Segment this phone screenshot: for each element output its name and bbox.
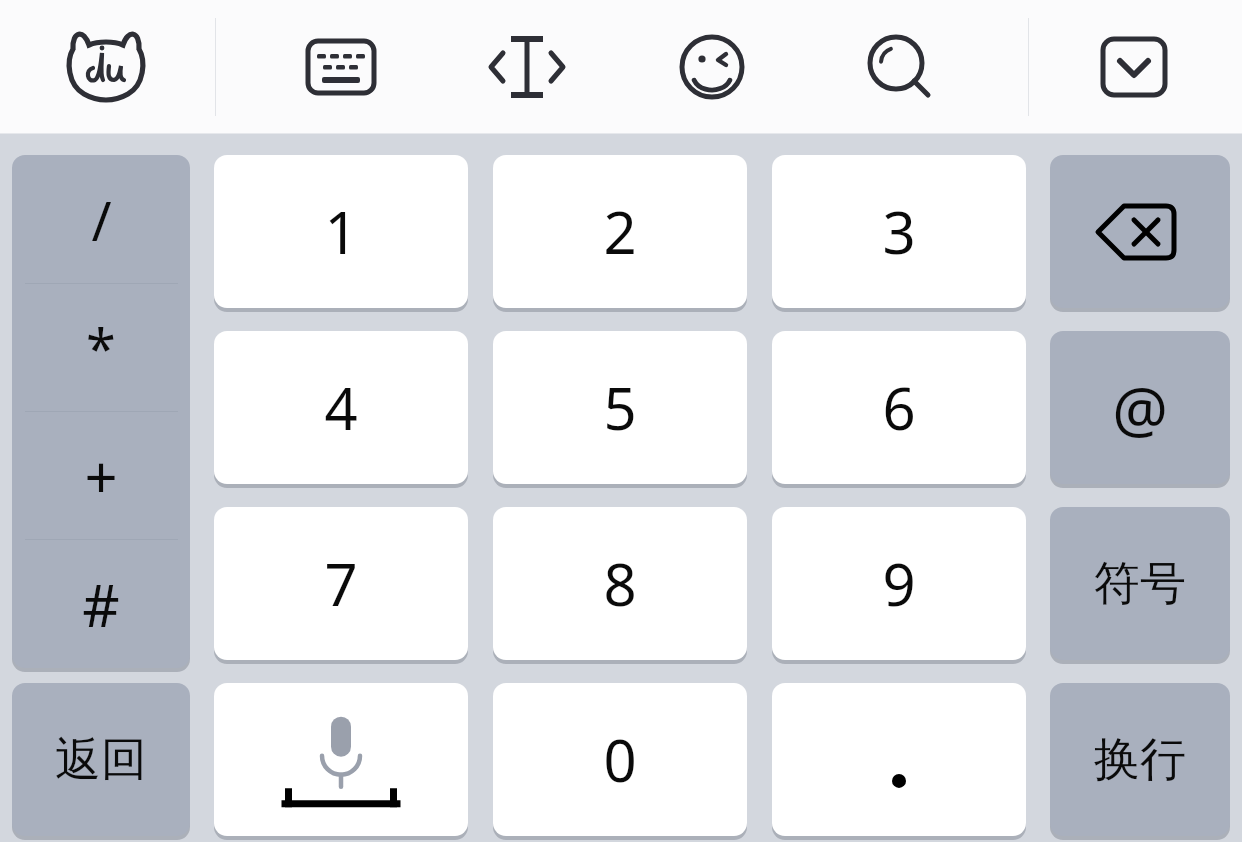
button[interactable]: Search (851, 19, 947, 115)
button[interactable]: Edit cursor (479, 19, 575, 115)
staticText: 0 (603, 720, 637, 799)
staticText: 2 (603, 192, 637, 271)
button[interactable]: 1 (214, 155, 468, 308)
button[interactable]: 8 (493, 507, 747, 660)
staticText: 9 (882, 544, 916, 623)
staticText: 5 (603, 368, 637, 447)
staticText: 1 (324, 192, 358, 271)
staticText: 换行 (1094, 731, 1186, 789)
staticText: 4 (324, 368, 358, 447)
button[interactable]: 4 (214, 331, 468, 484)
button[interactable]: 6 (772, 331, 1026, 484)
button[interactable]: 3 (772, 155, 1026, 308)
button[interactable]: Emoji (664, 19, 760, 115)
staticText: # (82, 565, 120, 644)
button[interactable]: / (12, 155, 190, 284)
staticText: 6 (882, 368, 916, 447)
button[interactable]: Space, voice input (214, 683, 468, 836)
staticText: 符号 (1094, 555, 1186, 613)
staticText: 8 (603, 544, 637, 623)
button[interactable]: 返回 (12, 683, 190, 836)
button[interactable]: 符号 (1050, 507, 1230, 660)
button[interactable]: + (12, 412, 190, 540)
button[interactable]: Keyboard layout (293, 19, 389, 115)
staticText: 7 (324, 544, 358, 623)
button[interactable]: 0 (493, 683, 747, 836)
staticText: * (86, 311, 116, 385)
staticText: 返回 (55, 731, 147, 789)
button[interactable]: 9 (772, 507, 1026, 660)
button[interactable]: 5 (493, 331, 747, 484)
staticText: @ (1112, 366, 1168, 450)
button[interactable]: 换行 (1050, 683, 1230, 836)
button[interactable]: Period (772, 683, 1026, 836)
staticText: 3 (882, 192, 916, 271)
button[interactable]: Baidu input (58, 19, 154, 115)
staticText: + (84, 437, 118, 516)
button[interactable]: Hide keyboard (1086, 19, 1182, 115)
button[interactable]: # (12, 540, 190, 668)
button[interactable]: * (12, 284, 190, 412)
staticText: / (91, 183, 112, 257)
button[interactable]: 2 (493, 155, 747, 308)
button[interactable]: @ (1050, 331, 1230, 484)
button[interactable]: 7 (214, 507, 468, 660)
button[interactable]: Backspace (1050, 155, 1230, 308)
